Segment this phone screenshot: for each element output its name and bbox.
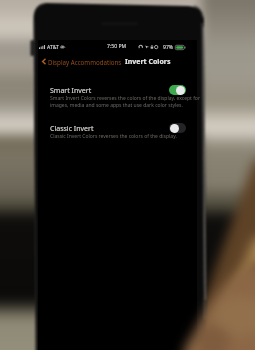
button[interactable]: Switch on: [169, 85, 186, 95]
staticText: Invert Colors: [125, 57, 171, 67]
button[interactable]: Classic Invert: [38, 120, 197, 142]
button[interactable]: Display Accommodations: [41, 56, 123, 67]
staticText: 97%: [163, 44, 174, 51]
button[interactable]: Smart Invert: [38, 82, 197, 104]
staticText: Classic Invert Colors reverses the color…: [50, 133, 177, 140]
staticText: Smart Invert Colors reverses the colors …: [50, 95, 200, 108]
staticText: Display Accommodations: [48, 58, 122, 66]
staticText: 7:50 PM: [107, 43, 127, 50]
button[interactable]: Switch off: [169, 123, 186, 133]
staticText: AT&T: [47, 44, 59, 51]
staticText: Smart Invert: [50, 86, 92, 96]
staticText: Classic Invert: [50, 124, 94, 134]
